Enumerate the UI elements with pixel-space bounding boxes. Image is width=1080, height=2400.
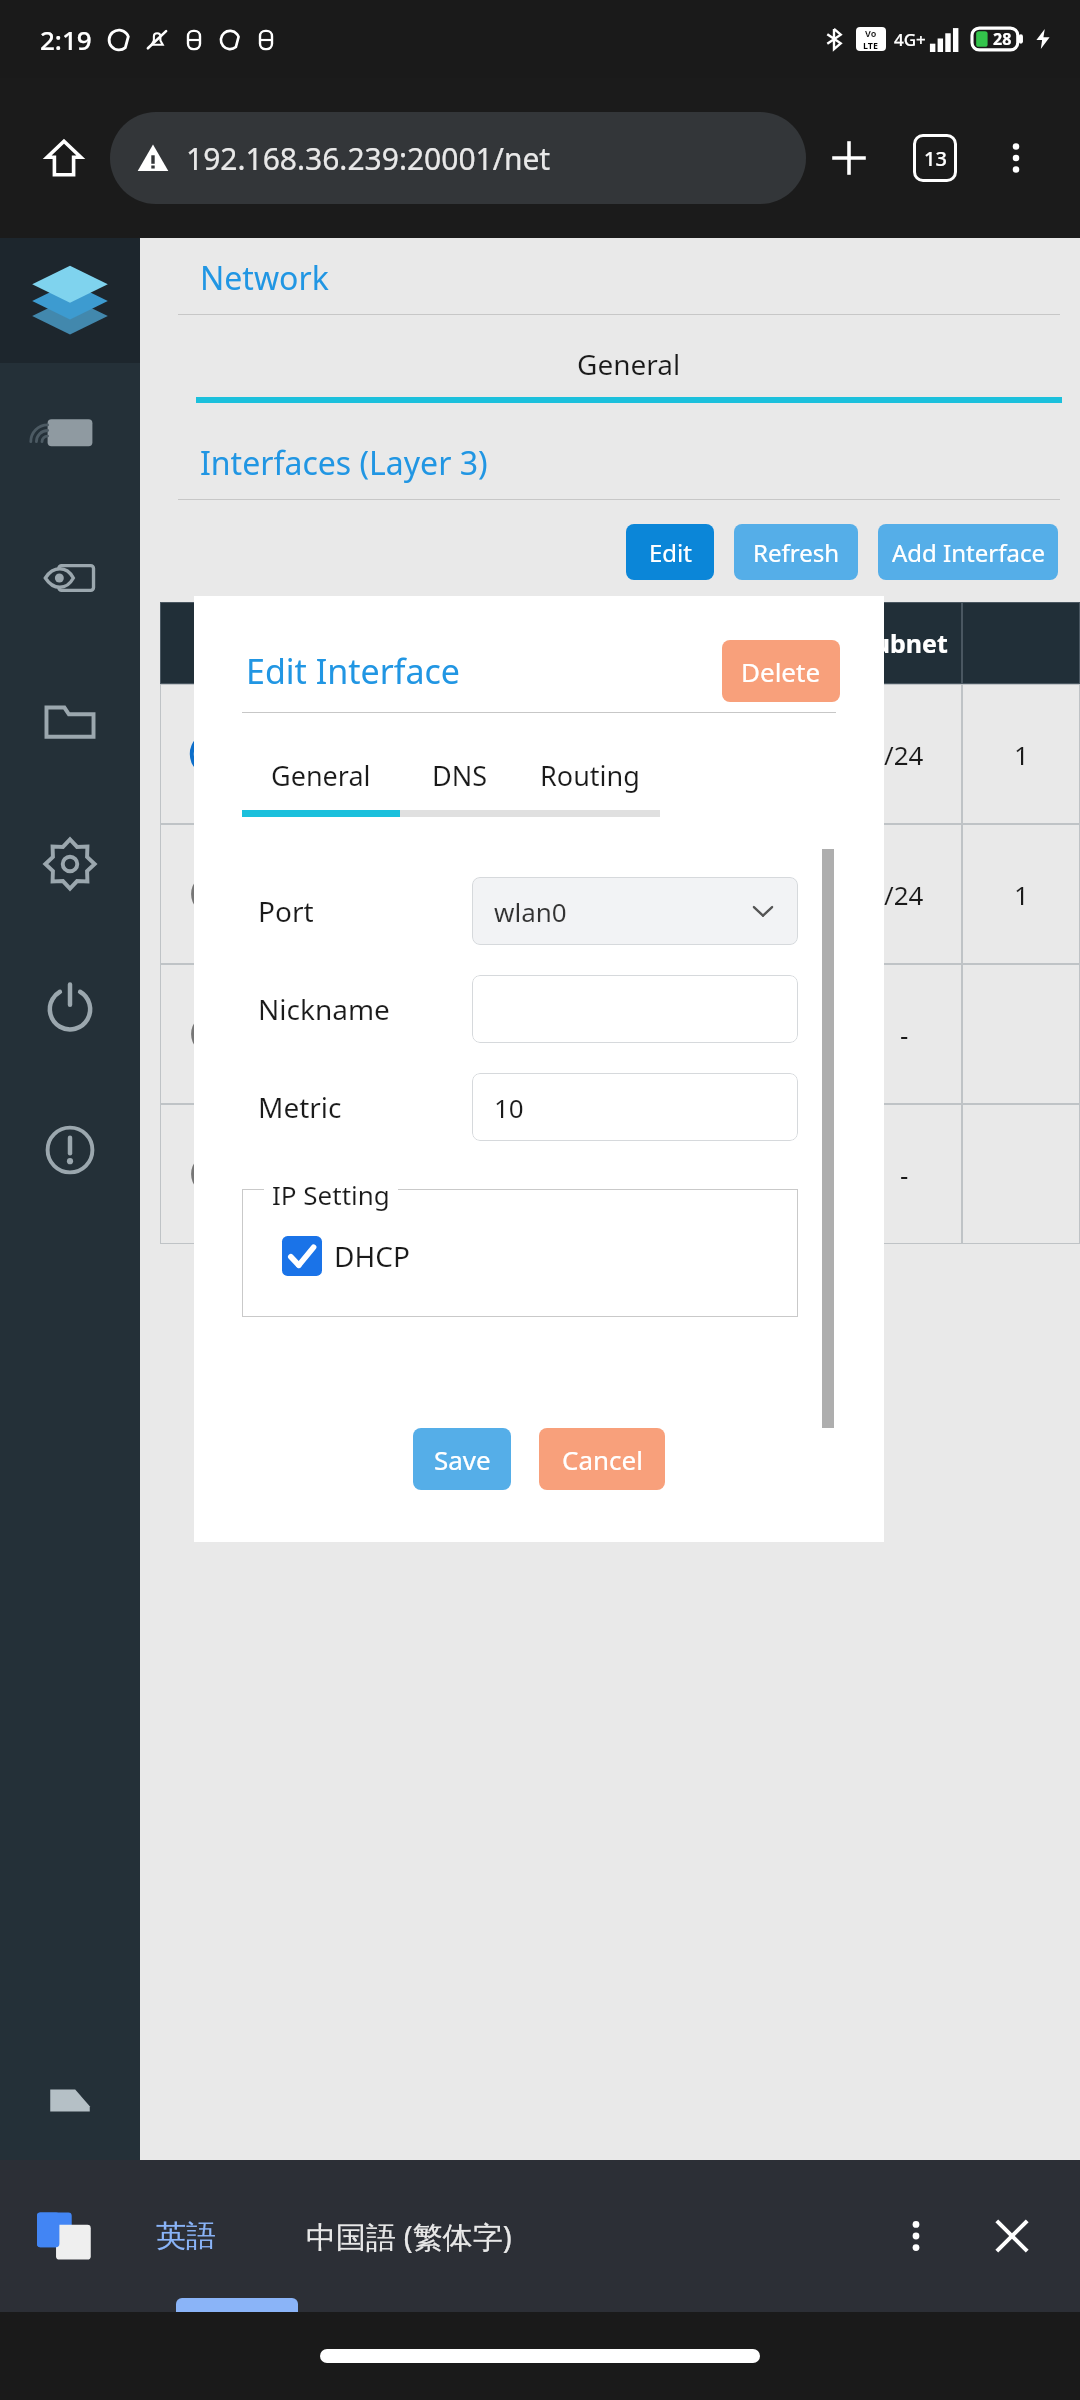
button[interactable]: Select wlan0 [160,684,263,824]
staticText: wlan0 [494,894,567,929]
staticText: Routing [540,757,640,794]
button[interactable]: Settings [0,792,140,935]
staticText: Cancel [562,1442,643,1477]
staticText: 英語 [156,2217,216,2255]
staticText: 1 [1014,737,1029,772]
staticText: Delete [741,654,821,689]
staticText: General [577,345,681,383]
button[interactable]: Translate options [880,2200,952,2272]
button[interactable]: Logout [0,2040,140,2160]
button[interactable]: Home [26,120,102,196]
button[interactable]: 10 [472,1073,798,1141]
staticText: 13 [924,145,947,172]
button[interactable]: Tabs, 13 open [892,115,978,201]
button[interactable]: New tab [806,115,892,201]
staticText: IP Setting [272,1177,390,1212]
staticText: /24 [884,737,924,772]
staticText: Vo [865,27,877,39]
button[interactable]: Select [160,824,263,964]
button[interactable]: Files [0,649,140,792]
staticText: IP Address [660,626,792,660]
staticText: Interfaces (Layer 3) [200,441,488,485]
staticText: Name [277,626,352,660]
staticText: 192.168.36.239:20001/net [186,138,551,179]
staticText: General [271,757,371,794]
button[interactable]: Add Interface [878,524,1058,580]
button[interactable]: Power [0,935,140,1078]
staticText: Metric [258,1088,342,1126]
button[interactable]: Edit [626,524,714,580]
staticText: UP [536,737,571,772]
staticText: wlan0 [277,737,350,772]
button[interactable]: 英語 [146,2217,226,2255]
button[interactable]: Google Translate [32,2203,98,2269]
staticText: LTE [863,39,879,51]
staticText: Add Interface [892,536,1045,569]
button[interactable]: Cancel [539,1428,665,1490]
staticText: - [900,1017,909,1052]
staticText: 4G+ [894,28,926,51]
button[interactable]: wlan0 [472,877,798,945]
staticText: 中国語 (繁体字) [306,2216,512,2257]
staticText: Edit Interface [246,648,460,694]
staticText: Edit [649,536,692,569]
button[interactable]: Dashboard [0,363,140,506]
staticText: 28 [993,28,1012,50]
button[interactable]: Save [413,1428,511,1490]
staticText: Network [200,256,329,300]
button[interactable]: DHCP [282,1236,410,1276]
button[interactable]: General [242,757,400,817]
button[interactable]: More options [978,120,1054,196]
staticText: DHCP [334,1237,410,1275]
button[interactable]: App logo [0,238,140,363]
button[interactable]: Delete [722,640,840,702]
staticText: 1 [1014,877,1029,912]
staticText: 2:19 [40,22,92,57]
button[interactable]: General [178,345,1080,403]
staticText: Nickname [258,990,390,1028]
staticText: Refresh [753,536,840,569]
button[interactable]: Routing [520,757,660,817]
button[interactable]: Close translate bar [976,2200,1048,2272]
button[interactable]: Alerts [0,1078,140,1221]
staticText: 10 [494,1090,524,1125]
staticText: - [900,1157,909,1192]
button[interactable]: Select [160,1104,263,1244]
staticText: Save [434,1442,491,1477]
button[interactable] [472,975,798,1043]
staticText: /24 [884,877,924,912]
staticText: Subnet [860,626,948,660]
button[interactable]: Refresh [734,524,858,580]
button[interactable]: Monitor [0,506,140,649]
button[interactable]: DNS [400,757,520,817]
staticText: Port [258,892,314,930]
button[interactable]: 192.168.36.239:20001/net [110,112,806,204]
button[interactable]: Select [160,964,263,1104]
button[interactable]: 中国語 (繁体字) [296,2216,522,2257]
staticText: DNS [432,757,488,794]
